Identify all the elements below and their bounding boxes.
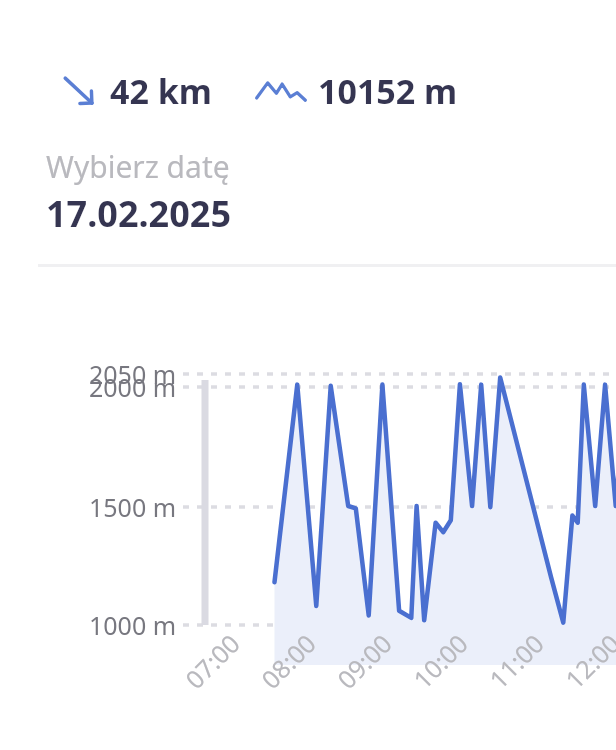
- staticText: 42 km: [110, 68, 212, 114]
- staticText: 17.02.2025: [46, 189, 231, 238]
- button[interactable]: Elevation gain: [252, 62, 458, 120]
- button[interactable]: Distance: [56, 68, 216, 114]
- other: Elevation gain: [252, 62, 310, 120]
- staticText: Wybierz datę: [46, 146, 230, 187]
- other: Distance: [56, 68, 102, 114]
- button[interactable]: Wybierz datę: [0, 146, 616, 238]
- staticText: 10152 m: [318, 68, 458, 114]
